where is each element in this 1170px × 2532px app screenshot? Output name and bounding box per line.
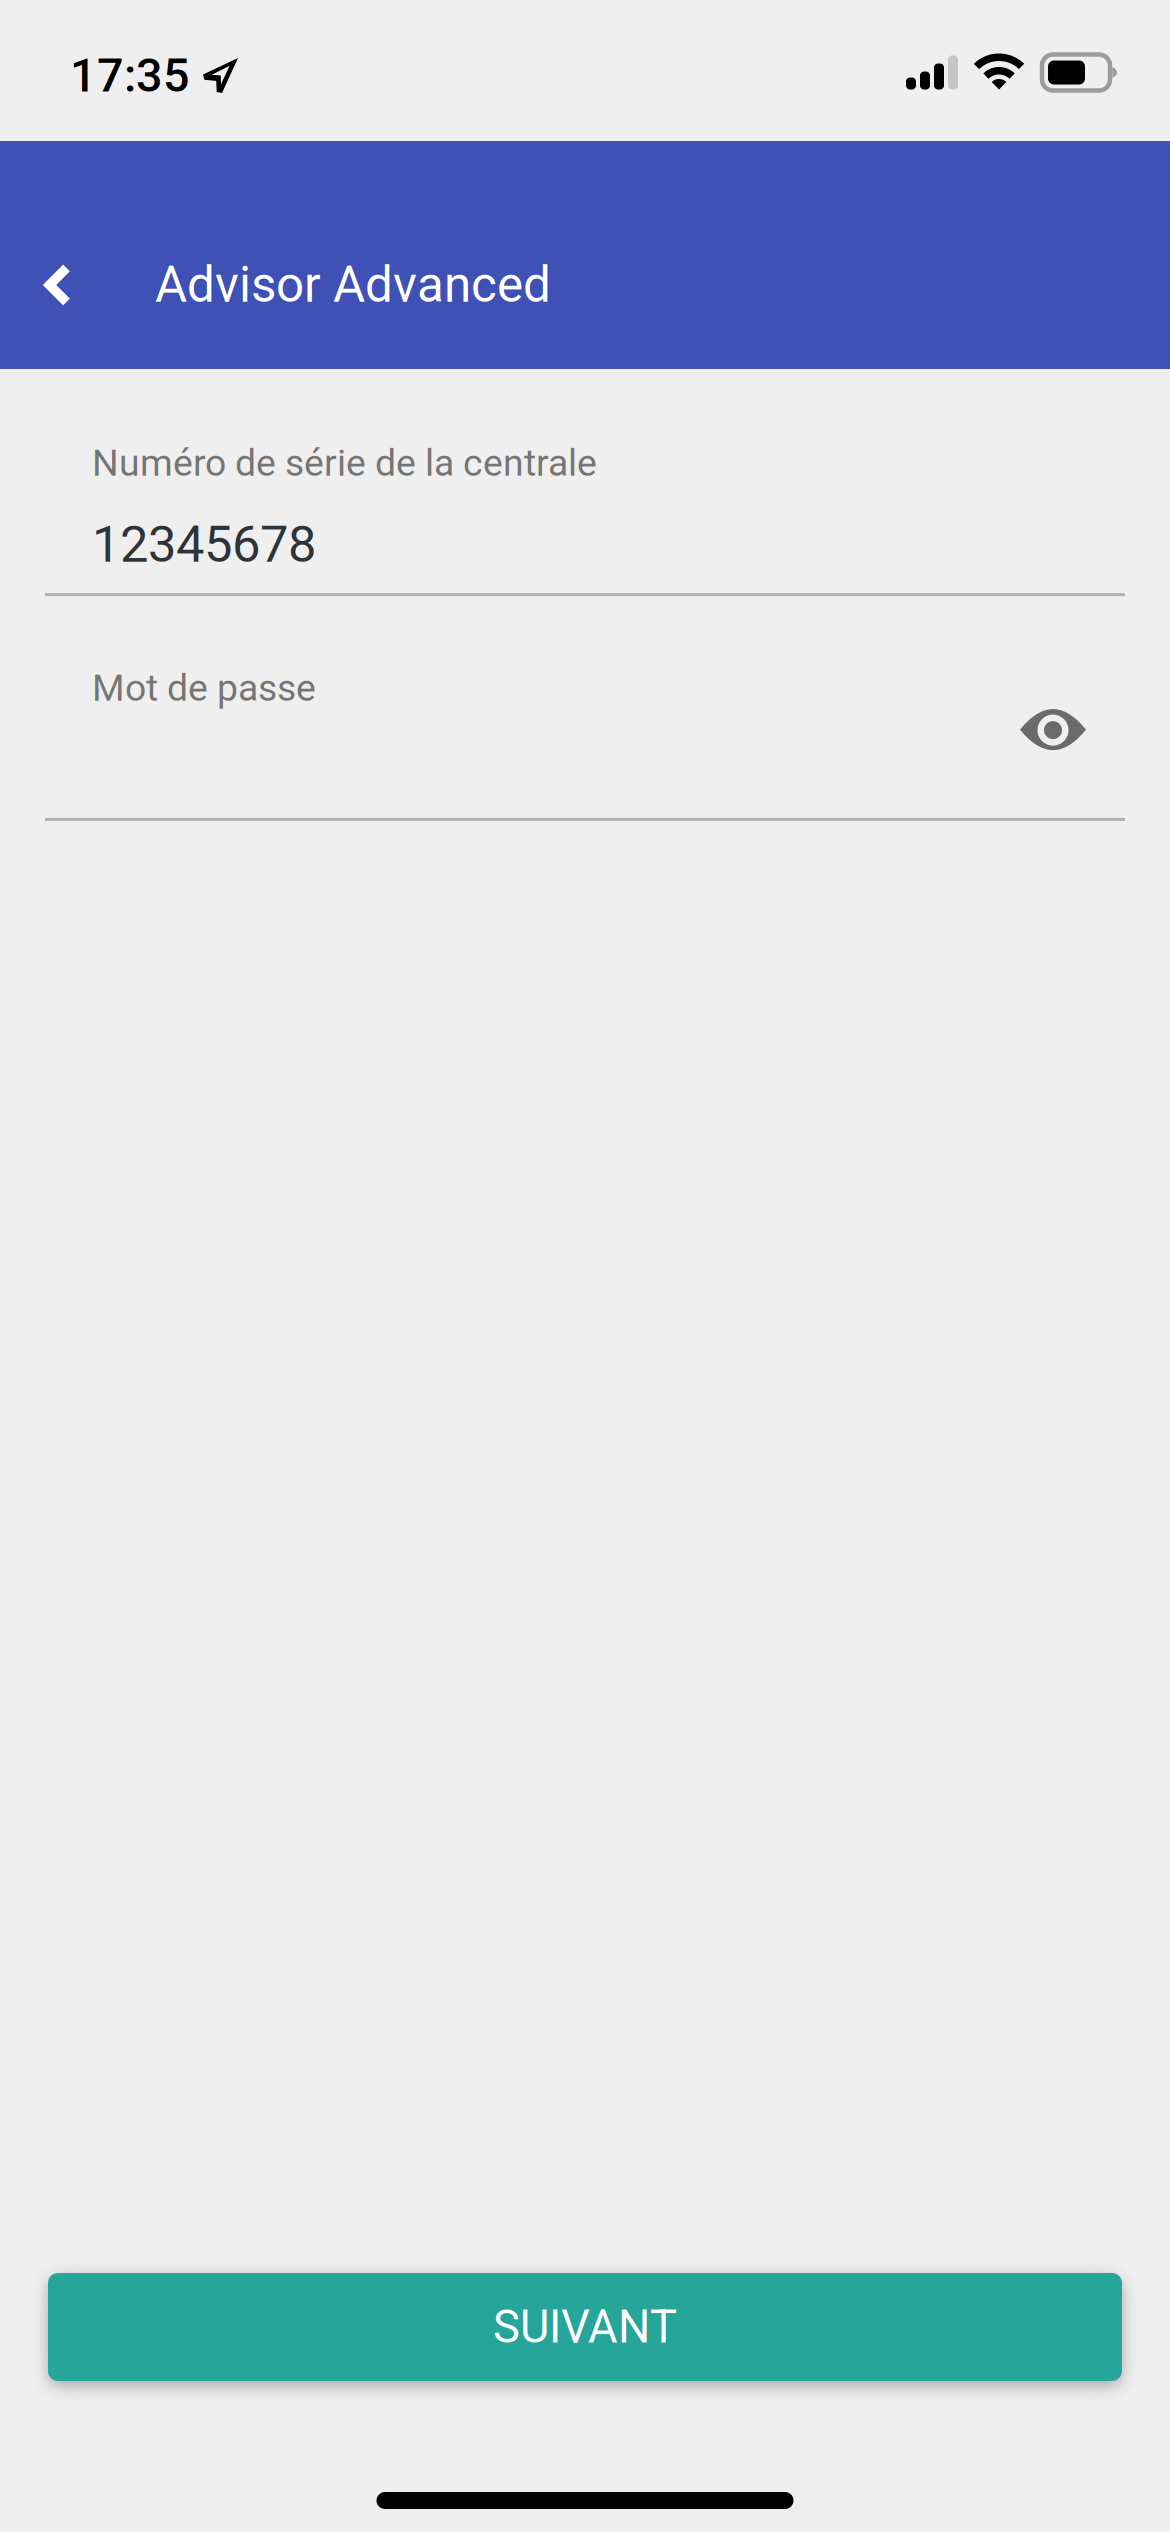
staticText: Mot de passe xyxy=(92,666,316,710)
staticText: SUIVANT xyxy=(493,2300,677,2353)
button[interactable]: Numéro de série de la centrale xyxy=(0,369,1170,593)
button[interactable]: SUIVANT xyxy=(48,2273,1122,2381)
button[interactable]: Back xyxy=(0,201,116,369)
staticText: 12345678 xyxy=(92,515,316,574)
staticText: Numéro de série de la centrale xyxy=(92,441,597,485)
staticText: Advisor Advanced xyxy=(155,256,551,314)
staticText: 17:35 xyxy=(70,48,190,103)
button[interactable]: Show password xyxy=(994,671,1112,789)
button[interactable]: Mot de passe xyxy=(0,596,994,818)
